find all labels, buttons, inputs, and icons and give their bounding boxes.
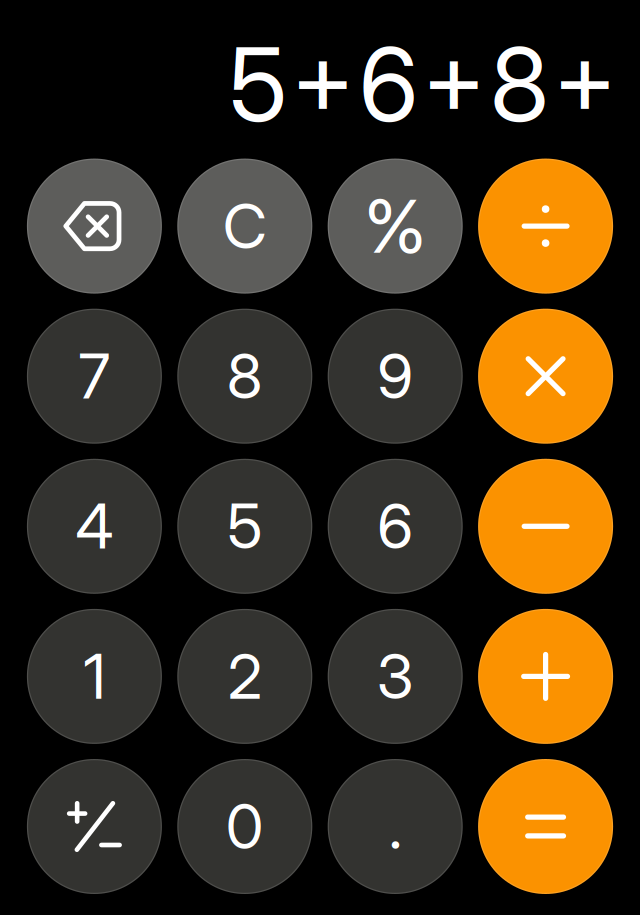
button[interactable]: Plus Minus: [27, 759, 162, 894]
button[interactable]: 0: [177, 759, 312, 894]
staticText: 3: [377, 639, 414, 713]
button[interactable]: Multiply: [478, 309, 613, 444]
button[interactable]: 8: [177, 309, 312, 444]
staticText: 2: [228, 639, 262, 713]
button[interactable]: 2: [177, 609, 312, 744]
button[interactable]: Equals: [478, 759, 613, 894]
button[interactable]: Clear: [177, 159, 312, 294]
staticText: 6: [377, 489, 413, 563]
button[interactable]: 6: [328, 459, 463, 594]
button[interactable]: Subtract: [478, 459, 613, 594]
button[interactable]: 4: [27, 459, 162, 594]
button[interactable]: 1: [27, 609, 162, 744]
staticText: 8: [227, 339, 263, 413]
staticText: 4: [75, 489, 113, 563]
button[interactable]: 5: [177, 459, 312, 594]
button[interactable]: 7: [27, 309, 162, 444]
button[interactable]: 9: [328, 309, 463, 444]
staticText: 9: [377, 339, 413, 413]
staticText: 5: [227, 489, 262, 563]
staticText: %: [364, 182, 426, 270]
button[interactable]: Percent: [328, 159, 463, 294]
staticText: 7: [78, 339, 110, 413]
button[interactable]: Decimal point: [328, 759, 463, 894]
staticText: 1: [83, 639, 105, 713]
button[interactable]: Delete: [27, 159, 162, 294]
staticText: 0: [226, 789, 264, 864]
staticText: 5+6+8+: [229, 23, 636, 146]
button[interactable]: Divide: [478, 159, 613, 294]
button[interactable]: 3: [328, 609, 463, 744]
button[interactable]: Add: [478, 609, 613, 744]
staticText: C: [223, 189, 267, 263]
staticText: .: [389, 789, 402, 864]
